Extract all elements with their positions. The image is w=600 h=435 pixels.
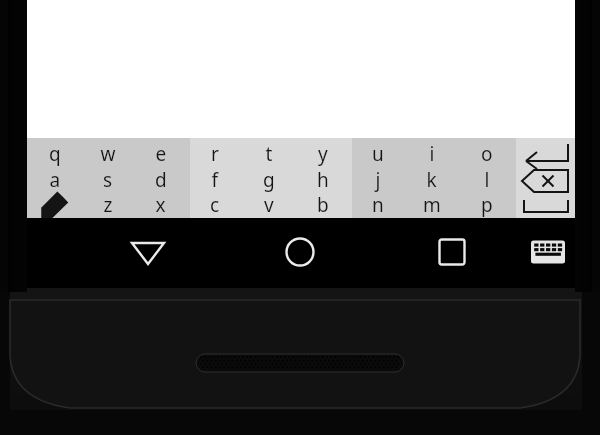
button[interactable]: r — [189, 138, 241, 165]
button[interactable]: c — [189, 192, 241, 218]
button[interactable]: Switch keyboard — [516, 218, 575, 288]
button[interactable]: a — [29, 165, 81, 192]
button[interactable]: d — [135, 165, 187, 192]
button[interactable]: i — [406, 138, 458, 165]
button[interactable]: k — [406, 165, 458, 192]
button[interactable]: Space — [516, 192, 575, 218]
button[interactable]: n — [352, 192, 404, 218]
button[interactable]: x — [135, 192, 187, 218]
button[interactable]: l — [461, 165, 513, 192]
button[interactable]: p — [461, 192, 513, 218]
button[interactable]: m — [406, 192, 458, 218]
button[interactable]: e — [135, 138, 187, 165]
button[interactable]: v — [243, 192, 295, 218]
button[interactable]: t — [243, 138, 295, 165]
button[interactable]: Back — [110, 218, 190, 288]
button[interactable]: Home — [262, 218, 340, 288]
button[interactable]: u — [352, 138, 404, 165]
button[interactable]: shift — [29, 192, 81, 218]
button[interactable]: b — [297, 192, 349, 218]
button[interactable]: o — [461, 138, 513, 165]
button[interactable]: y — [297, 138, 349, 165]
button[interactable]: q — [29, 138, 81, 165]
button[interactable]: Enter — [516, 138, 575, 165]
button[interactable]: f — [189, 165, 241, 192]
button[interactable]: j — [352, 165, 404, 192]
button[interactable]: s — [82, 165, 134, 192]
button[interactable]: z — [82, 192, 134, 218]
button[interactable]: w — [82, 138, 134, 165]
button[interactable]: Recent apps — [414, 218, 492, 288]
button[interactable]: Backspace — [516, 165, 575, 192]
button[interactable]: g — [243, 165, 295, 192]
button[interactable]: h — [297, 165, 349, 192]
